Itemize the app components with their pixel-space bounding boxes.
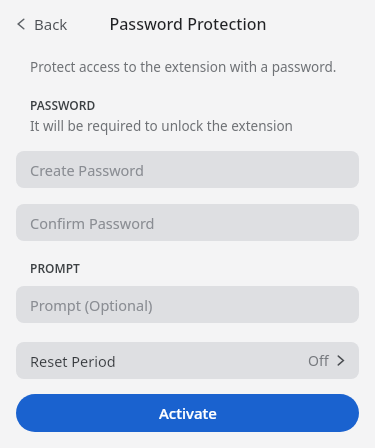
staticText: PASSWORD — [30, 97, 96, 113]
button[interactable]: Confirm Password — [16, 204, 359, 241]
staticText: It will be required to unlock the extens… — [30, 117, 293, 135]
button[interactable]: Create Password — [16, 151, 359, 188]
staticText: Reset Period — [30, 351, 116, 371]
staticText: Create Password — [30, 160, 144, 180]
staticText: Confirm Password — [30, 213, 155, 233]
button[interactable]: Back — [10, 10, 72, 38]
button[interactable]: Reset Period — [16, 342, 359, 379]
other: Back — [14, 17, 28, 31]
staticText: Back — [34, 14, 68, 34]
staticText: Off — [308, 351, 329, 370]
button[interactable]: Activate — [16, 394, 359, 432]
staticText: PROMPT — [30, 260, 80, 276]
staticText: Protect access to the extension with a p… — [30, 58, 337, 76]
staticText: Prompt (Optional) — [30, 295, 153, 315]
button[interactable]: Prompt (Optional) — [16, 286, 359, 323]
staticText: Password Protection — [109, 13, 267, 35]
staticText: Activate — [159, 403, 217, 423]
